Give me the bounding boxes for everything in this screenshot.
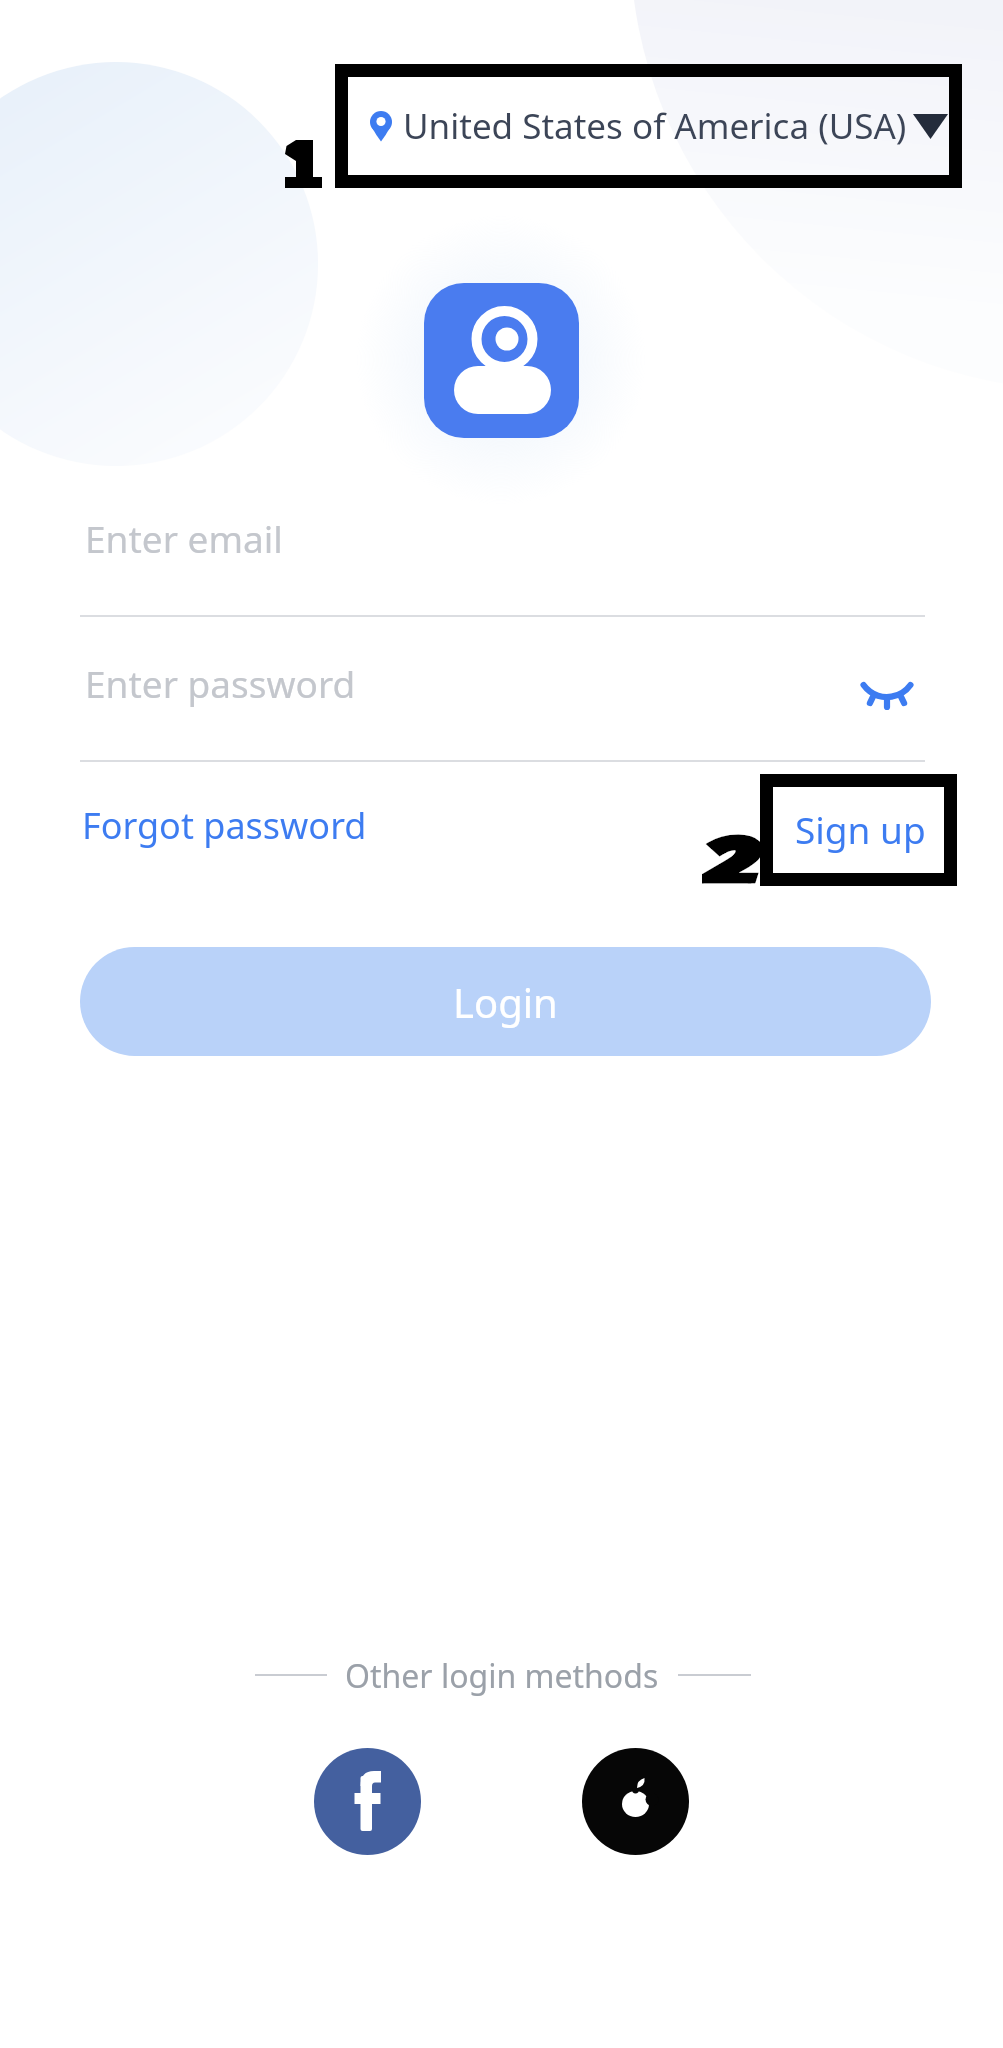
staticText: Enter email	[85, 513, 283, 563]
button[interactable]	[314, 1748, 421, 1855]
staticText: Login	[453, 975, 558, 1029]
staticText: Other login methods	[345, 1654, 659, 1698]
button[interactable]: Login	[80, 947, 931, 1056]
staticText: 2	[702, 815, 763, 883]
button[interactable]: Enter email	[80, 495, 925, 611]
staticText: Sign up	[795, 804, 926, 854]
staticText: Forgot password	[82, 801, 367, 850]
button[interactable]	[582, 1748, 689, 1855]
staticText: United States of America (USA)	[403, 102, 907, 150]
button[interactable]: Forgot password	[78, 794, 418, 856]
button[interactable]	[852, 668, 922, 732]
staticText: Enter password	[85, 658, 356, 708]
button[interactable]: Enter password	[80, 640, 925, 756]
button[interactable]: Sign up	[788, 798, 933, 860]
staticText: 2	[702, 815, 763, 883]
button[interactable]: United States of America (USA)	[348, 77, 949, 175]
